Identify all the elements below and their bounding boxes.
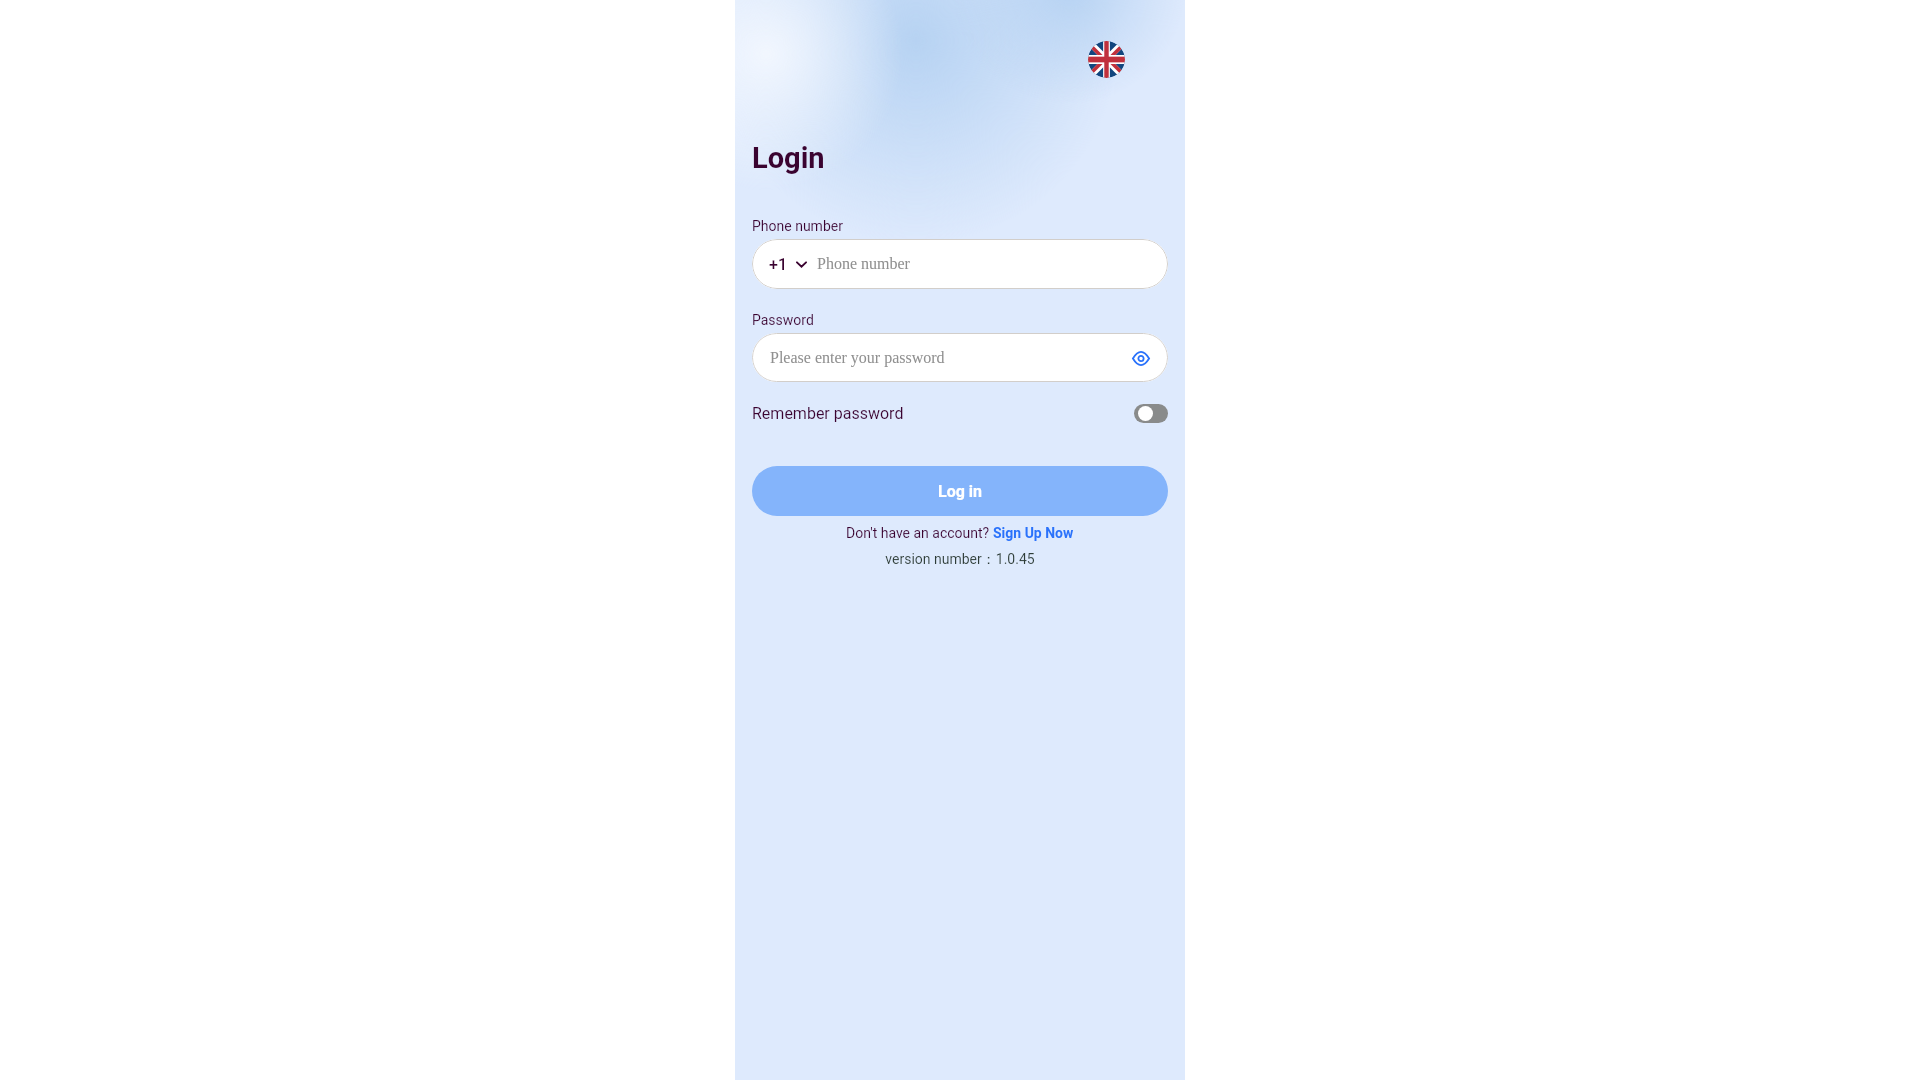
button[interactable]: Show password — [1123, 340, 1159, 376]
staticText: Phone number — [817, 255, 910, 273]
staticText: Phone number — [752, 218, 843, 234]
button[interactable]: +1 — [752, 239, 1168, 289]
staticText: Please enter your password — [770, 349, 945, 367]
button[interactable]: Sign Up Now — [993, 525, 1074, 541]
staticText: +1 — [769, 255, 788, 274]
button[interactable]: Log in — [752, 466, 1168, 516]
button[interactable]: Please enter your password — [752, 333, 1168, 382]
staticText: Remember password — [752, 404, 904, 423]
button[interactable]: Select language — [1088, 41, 1125, 78]
staticText: Log in — [938, 482, 983, 501]
staticText: Sign Up Now — [993, 525, 1074, 541]
button[interactable]: Remember password — [1134, 404, 1168, 423]
staticText: Don't have an account? — [846, 525, 993, 541]
staticText: Password — [752, 312, 814, 328]
staticText: version number：1.0.45 — [752, 551, 1168, 569]
staticText: Login — [752, 141, 825, 175]
